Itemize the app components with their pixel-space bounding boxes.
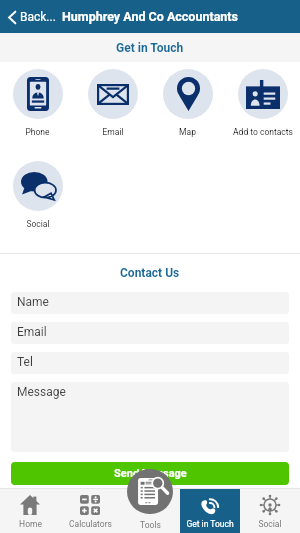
button[interactable]: Phone bbox=[0, 69, 75, 137]
staticText: Get in Touch bbox=[186, 519, 234, 529]
button[interactable]: Email bbox=[75, 69, 150, 137]
button[interactable]: Social bbox=[240, 489, 300, 533]
button[interactable]: Message bbox=[11, 382, 289, 452]
button[interactable]: Tel bbox=[11, 352, 289, 374]
staticText: Get in Touch bbox=[116, 41, 184, 55]
staticText: Contact Us bbox=[120, 266, 180, 280]
button[interactable]: Send Message bbox=[11, 462, 289, 485]
staticText: Map bbox=[179, 127, 196, 137]
button[interactable]: Get in Touch bbox=[180, 489, 240, 533]
staticText: Phone bbox=[25, 127, 50, 137]
button[interactable]: Back... bbox=[0, 6, 60, 28]
staticText: Social bbox=[258, 519, 282, 529]
button[interactable]: Calculators bbox=[60, 489, 120, 533]
staticText: Tel bbox=[17, 355, 33, 369]
staticText: Calculators bbox=[69, 519, 112, 529]
staticText: Social bbox=[26, 219, 50, 229]
staticText: Email bbox=[102, 127, 124, 137]
button[interactable]: Map bbox=[150, 69, 225, 137]
staticText: Add to contacts bbox=[233, 127, 293, 137]
staticText: Send Message bbox=[114, 467, 187, 480]
staticText: Home bbox=[19, 519, 42, 529]
staticText: Back... bbox=[20, 10, 56, 24]
staticText: Name bbox=[17, 295, 49, 309]
button[interactable]: Name bbox=[11, 292, 289, 314]
button[interactable]: Home bbox=[0, 489, 60, 533]
button[interactable]: Email bbox=[11, 322, 289, 344]
staticText: Email bbox=[17, 325, 47, 339]
staticText: Humphrey And Co Accountants bbox=[62, 9, 238, 24]
button[interactable]: Tools bbox=[127, 469, 173, 514]
button[interactable]: Add to contacts bbox=[225, 69, 300, 137]
button[interactable]: Social bbox=[0, 161, 75, 229]
staticText: Message bbox=[17, 385, 66, 399]
staticText: Tools bbox=[140, 520, 161, 530]
